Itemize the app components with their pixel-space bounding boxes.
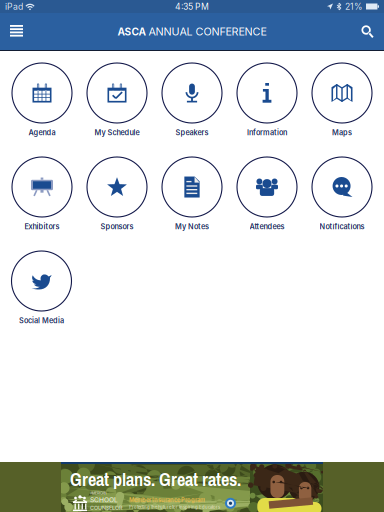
- button[interactable]: Exhibitors: [4, 157, 79, 236]
- staticText: My Schedule: [94, 128, 139, 137]
- button[interactable]: Search: [351, 13, 384, 50]
- staticText: 21%: [345, 1, 363, 12]
- button[interactable]: Menu: [0, 13, 33, 50]
- staticText: Speakers: [175, 128, 208, 137]
- staticText: My Notes: [175, 222, 209, 231]
- button[interactable]: Maps: [304, 63, 379, 142]
- staticText: Protecting the Future for Inspiring Educ…: [129, 505, 220, 510]
- staticText: Sponsors: [100, 222, 133, 231]
- staticText: Information: [247, 128, 287, 137]
- button[interactable]: My Schedule: [79, 63, 154, 142]
- staticText: Agenda: [28, 128, 55, 137]
- button[interactable]: Agenda: [4, 63, 79, 142]
- staticText: SCHOOL: [90, 496, 118, 504]
- button[interactable]: My Notes: [154, 157, 229, 236]
- staticText: Maps: [332, 128, 352, 137]
- button[interactable]: Speakers: [154, 63, 229, 142]
- button[interactable]: Attendees: [229, 157, 304, 236]
- staticText: Exhibitors: [24, 222, 59, 231]
- staticText: Great plans. Great rates.: [70, 467, 241, 492]
- staticText: ASCA ANNUAL CONFERENCE: [117, 25, 266, 38]
- button[interactable]: Advertisement: [0, 462, 384, 512]
- staticText: Notifications: [319, 222, 364, 231]
- staticText: COUNSELOR: [90, 505, 122, 511]
- staticText: iPad: [5, 1, 23, 12]
- staticText: Member Insurance Program: [129, 497, 205, 504]
- button[interactable]: Information: [229, 63, 304, 142]
- button[interactable]: Sponsors: [79, 157, 154, 236]
- button[interactable]: Notifications: [304, 157, 379, 236]
- staticText: AMERICAN: [90, 491, 107, 495]
- button[interactable]: Social Media: [4, 251, 79, 330]
- staticText: Attendees: [249, 222, 284, 231]
- staticText: 4:35 PM: [175, 1, 209, 12]
- staticText: Social Media: [19, 316, 64, 325]
